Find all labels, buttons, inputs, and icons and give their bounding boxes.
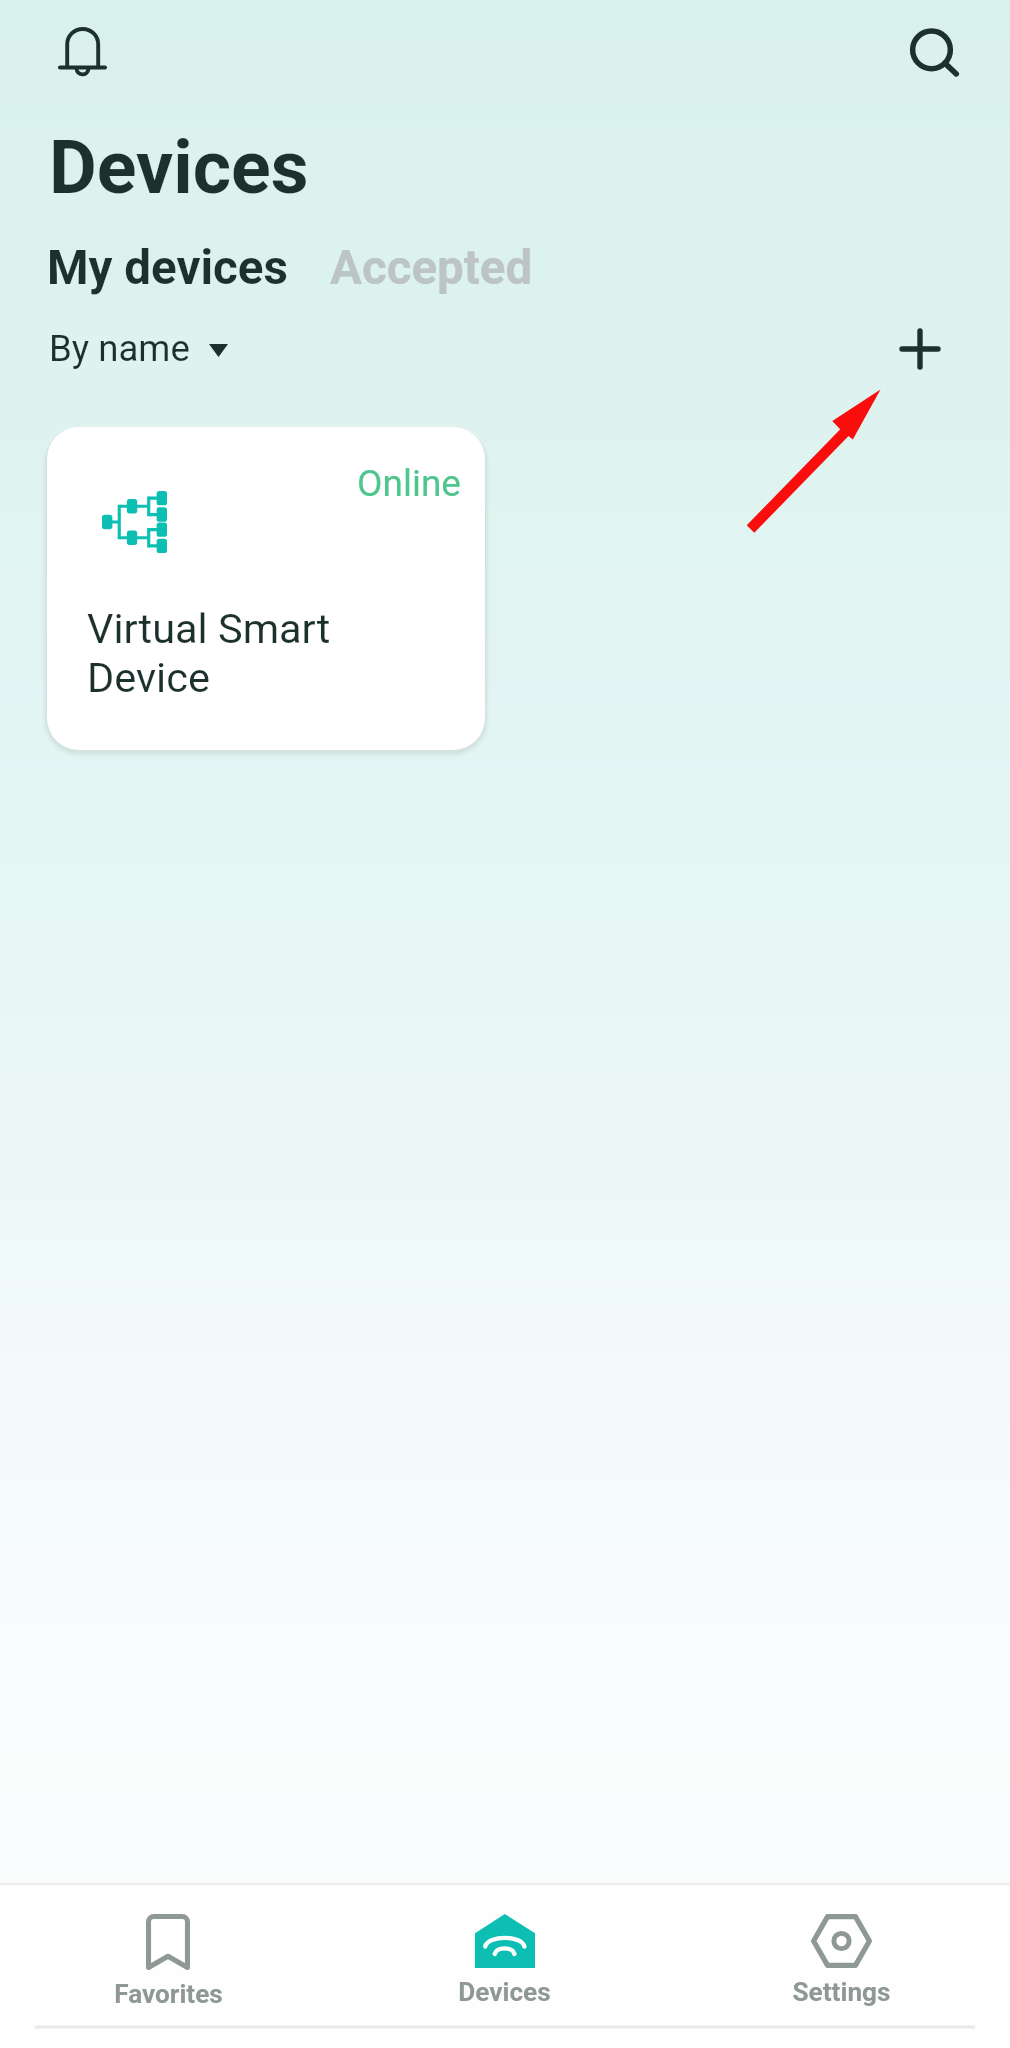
button[interactable]: Devices [336,1883,673,2048]
button[interactable]: Favorites [0,1883,336,2048]
staticText: My devices [47,240,288,296]
staticText: Virtual Smart Device [87,604,331,702]
staticText: Devices [49,125,309,211]
staticText: Devices [458,1977,551,2008]
staticText: By name [49,327,190,370]
staticText: Accepted [330,240,533,296]
staticText: Online [357,462,461,505]
button[interactable]: Add device [878,307,962,391]
button[interactable]: My devices [45,240,290,296]
staticText: Settings [792,1977,891,2008]
button[interactable]: Online [47,427,485,750]
button[interactable]: Search [885,3,983,101]
staticText: Favorites [114,1979,223,2010]
button[interactable]: Notifications [33,2,131,100]
button[interactable]: Settings [673,1883,1010,2048]
button[interactable]: By name [49,327,228,370]
button[interactable]: Accepted [328,240,535,296]
